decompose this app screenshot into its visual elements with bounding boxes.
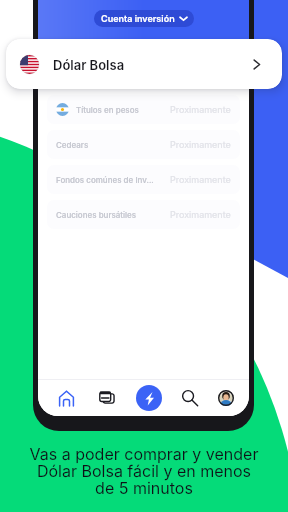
staticText: Vas a poder comprar y vender Dólar Bolsa…: [0, 444, 288, 498]
staticText: Proximamente: [170, 174, 231, 185]
button[interactable]: Buscar: [177, 385, 203, 411]
staticText: Títulos en pesos: [76, 105, 139, 115]
staticText: Dólar Bolsa: [53, 57, 125, 73]
button[interactable]: Tarjetas: [94, 385, 120, 411]
button[interactable]: Fondos comúnes de Inv...: [47, 165, 240, 194]
button[interactable]: Inicio: [53, 385, 79, 411]
staticText: Cedears: [56, 140, 89, 150]
button[interactable]: Cedears: [47, 130, 240, 159]
staticText: Proximamente: [170, 139, 231, 150]
button[interactable]: Cuenta inversión: [94, 10, 194, 27]
button[interactable]: Acciones rápidas: [136, 385, 162, 411]
button[interactable]: Perfil: [218, 390, 234, 406]
staticText: Cauciones bursátiles: [56, 210, 137, 220]
staticText: Cuenta inversión: [101, 13, 175, 24]
staticText: Proximamente: [170, 104, 231, 115]
staticText: Proximamente: [170, 209, 231, 220]
button[interactable]: Cauciones bursátiles: [47, 200, 240, 229]
button[interactable]: Dólar Bolsa: [6, 39, 282, 89]
staticText: Fondos comúnes de Inv...: [56, 175, 154, 185]
button[interactable]: Títulos en pesos: [47, 95, 240, 124]
